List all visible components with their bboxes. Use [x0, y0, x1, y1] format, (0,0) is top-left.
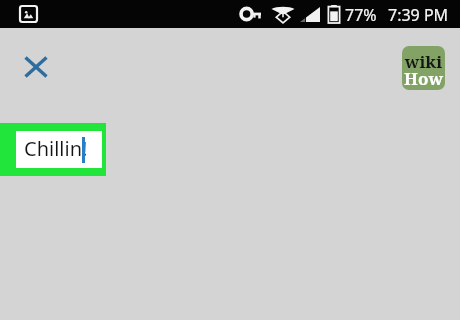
- button[interactable]: Close: [12, 44, 60, 90]
- staticText: How: [402, 67, 445, 87]
- staticText: Chillin!: [24, 135, 88, 162]
- staticText: 7:39 PM: [388, 4, 449, 26]
- staticText: 77%: [345, 4, 377, 26]
- staticText: wiki: [402, 50, 445, 70]
- button[interactable]: Chillin!: [0, 123, 106, 176]
- button[interactable]: wikiHow: [402, 46, 445, 90]
